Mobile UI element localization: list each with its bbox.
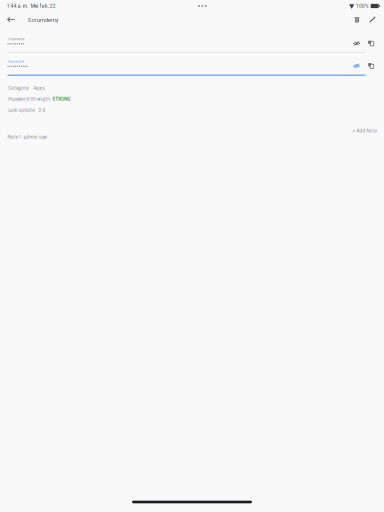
staticText: Note 1: admin user xyxy=(7,134,47,140)
button[interactable]: Copy password xyxy=(365,59,378,72)
button[interactable]: Hide username xyxy=(350,37,363,50)
staticText: 1:44 a. m. xyxy=(7,3,28,9)
staticText: Category: xyxy=(8,86,29,91)
staticText: Scrumdemy xyxy=(28,16,59,23)
staticText: Mié feb. 22 xyxy=(31,3,56,9)
staticText: Password Strength: xyxy=(8,96,51,102)
staticText: STRONG xyxy=(52,96,70,102)
button[interactable]: Delete xyxy=(349,12,364,27)
staticText: Last update: xyxy=(8,107,35,113)
staticText: 100% xyxy=(356,3,369,9)
button[interactable]: Hide password xyxy=(350,59,363,72)
button[interactable]: Edit xyxy=(365,12,380,27)
button[interactable]: Back xyxy=(2,10,20,28)
staticText: Apps xyxy=(33,86,44,91)
staticText: 0 d xyxy=(38,107,45,113)
staticText: + Add Note xyxy=(353,128,377,134)
button[interactable]: + Add Note xyxy=(297,127,377,135)
staticText: Username xyxy=(8,37,25,41)
button[interactable]: Copy username xyxy=(365,37,378,50)
staticText: Password xyxy=(8,59,24,64)
